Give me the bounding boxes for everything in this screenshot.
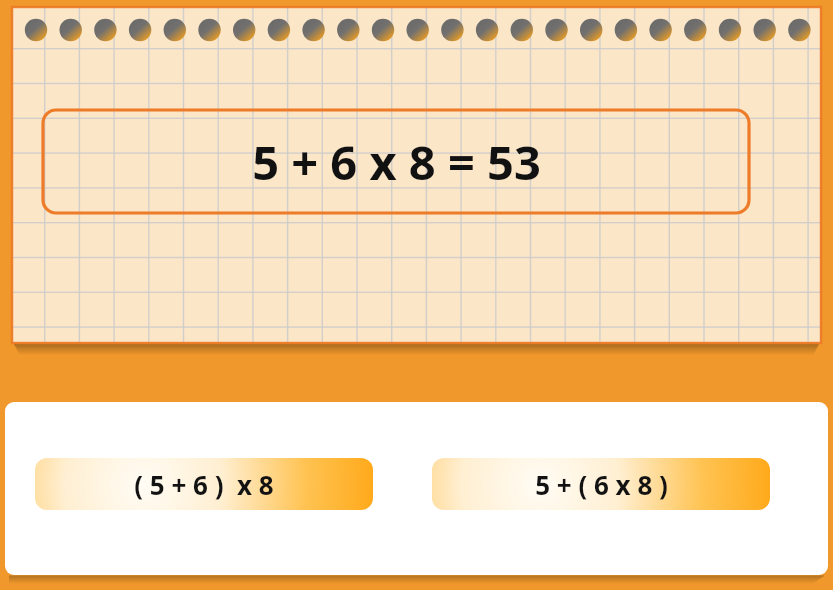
button[interactable]: ( 5 + 6 ) x 8 xyxy=(35,458,373,510)
staticText: 5 + ( 6 x 8 ) xyxy=(535,467,668,502)
staticText: ( 5 + 6 ) x 8 xyxy=(134,467,274,502)
button[interactable]: 5 + 6 x 8 = 53 xyxy=(43,110,749,213)
staticText: 5 + 6 x 8 = 53 xyxy=(252,130,541,194)
button[interactable]: 5 + ( 6 x 8 ) xyxy=(432,458,770,510)
